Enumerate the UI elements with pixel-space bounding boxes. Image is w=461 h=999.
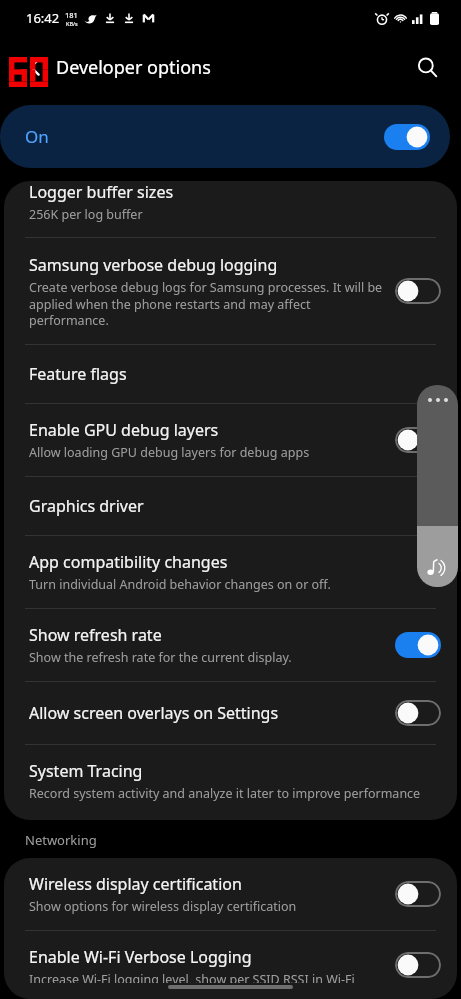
staticText: Enable GPU debug layers (29, 419, 219, 441)
button[interactable] (395, 952, 441, 978)
staticText: Graphics driver (29, 495, 144, 517)
button[interactable]: Show refresh rate (4, 609, 457, 681)
button[interactable] (395, 427, 441, 453)
button[interactable]: Wireless display certification (4, 858, 457, 930)
button[interactable] (395, 632, 441, 658)
staticText: 16:42 (26, 9, 60, 27)
staticText: Allow loading GPU debug layers for debug… (29, 444, 310, 461)
staticText: Record system activity and analyze it la… (29, 785, 421, 802)
staticText: On (25, 125, 49, 148)
staticText: App compatibility changes (29, 551, 228, 573)
button[interactable]: Logger buffer sizes (4, 181, 457, 237)
staticText: Samsung verbose debug logging (29, 254, 278, 276)
button[interactable] (384, 124, 430, 150)
button[interactable]: Back (14, 46, 56, 88)
button[interactable]: Enable GPU debug layers (4, 404, 457, 476)
button[interactable]: Allow screen overlays on Settings (4, 682, 457, 744)
button[interactable] (395, 881, 441, 907)
staticText: Developer options (56, 55, 211, 80)
button[interactable]: Samsung verbose debug logging (4, 238, 457, 344)
staticText: KB/s (66, 20, 78, 27)
staticText: Enable Wi-Fi Verbose Logging (29, 946, 252, 968)
staticText: Allow screen overlays on Settings (29, 702, 279, 724)
button[interactable] (395, 278, 441, 304)
staticText: Wireless display certification (29, 873, 242, 895)
staticText: 181 (65, 10, 78, 20)
staticText: Create verbose debug logs for Samsung pr… (29, 279, 385, 328)
button[interactable]: Graphics driver (4, 477, 457, 535)
staticText: 256K per log buffer (29, 206, 143, 223)
staticText: Show options for wireless display certif… (29, 898, 297, 915)
staticText: Show refresh rate (29, 624, 162, 646)
button[interactable]: Enable Wi-Fi Verbose Logging (4, 931, 457, 999)
button[interactable]: System Tracing (4, 745, 457, 820)
button[interactable]: On (0, 105, 450, 168)
staticText: Show the refresh rate for the current di… (29, 649, 292, 666)
staticText: Networking (25, 831, 97, 849)
staticText: Feature flags (29, 363, 127, 385)
staticText: Increase Wi-Fi logging level, show per S… (29, 971, 385, 983)
staticText: System Tracing (29, 760, 143, 782)
staticText: Logger buffer sizes (29, 181, 174, 203)
staticText: Turn individual Android behavior changes… (29, 576, 331, 593)
button[interactable]: Feature flags (4, 345, 457, 403)
button[interactable]: Floating media widget (417, 385, 458, 587)
button[interactable] (395, 700, 441, 726)
button[interactable]: Search (405, 45, 449, 89)
button[interactable]: App compatibility changes (4, 536, 457, 608)
